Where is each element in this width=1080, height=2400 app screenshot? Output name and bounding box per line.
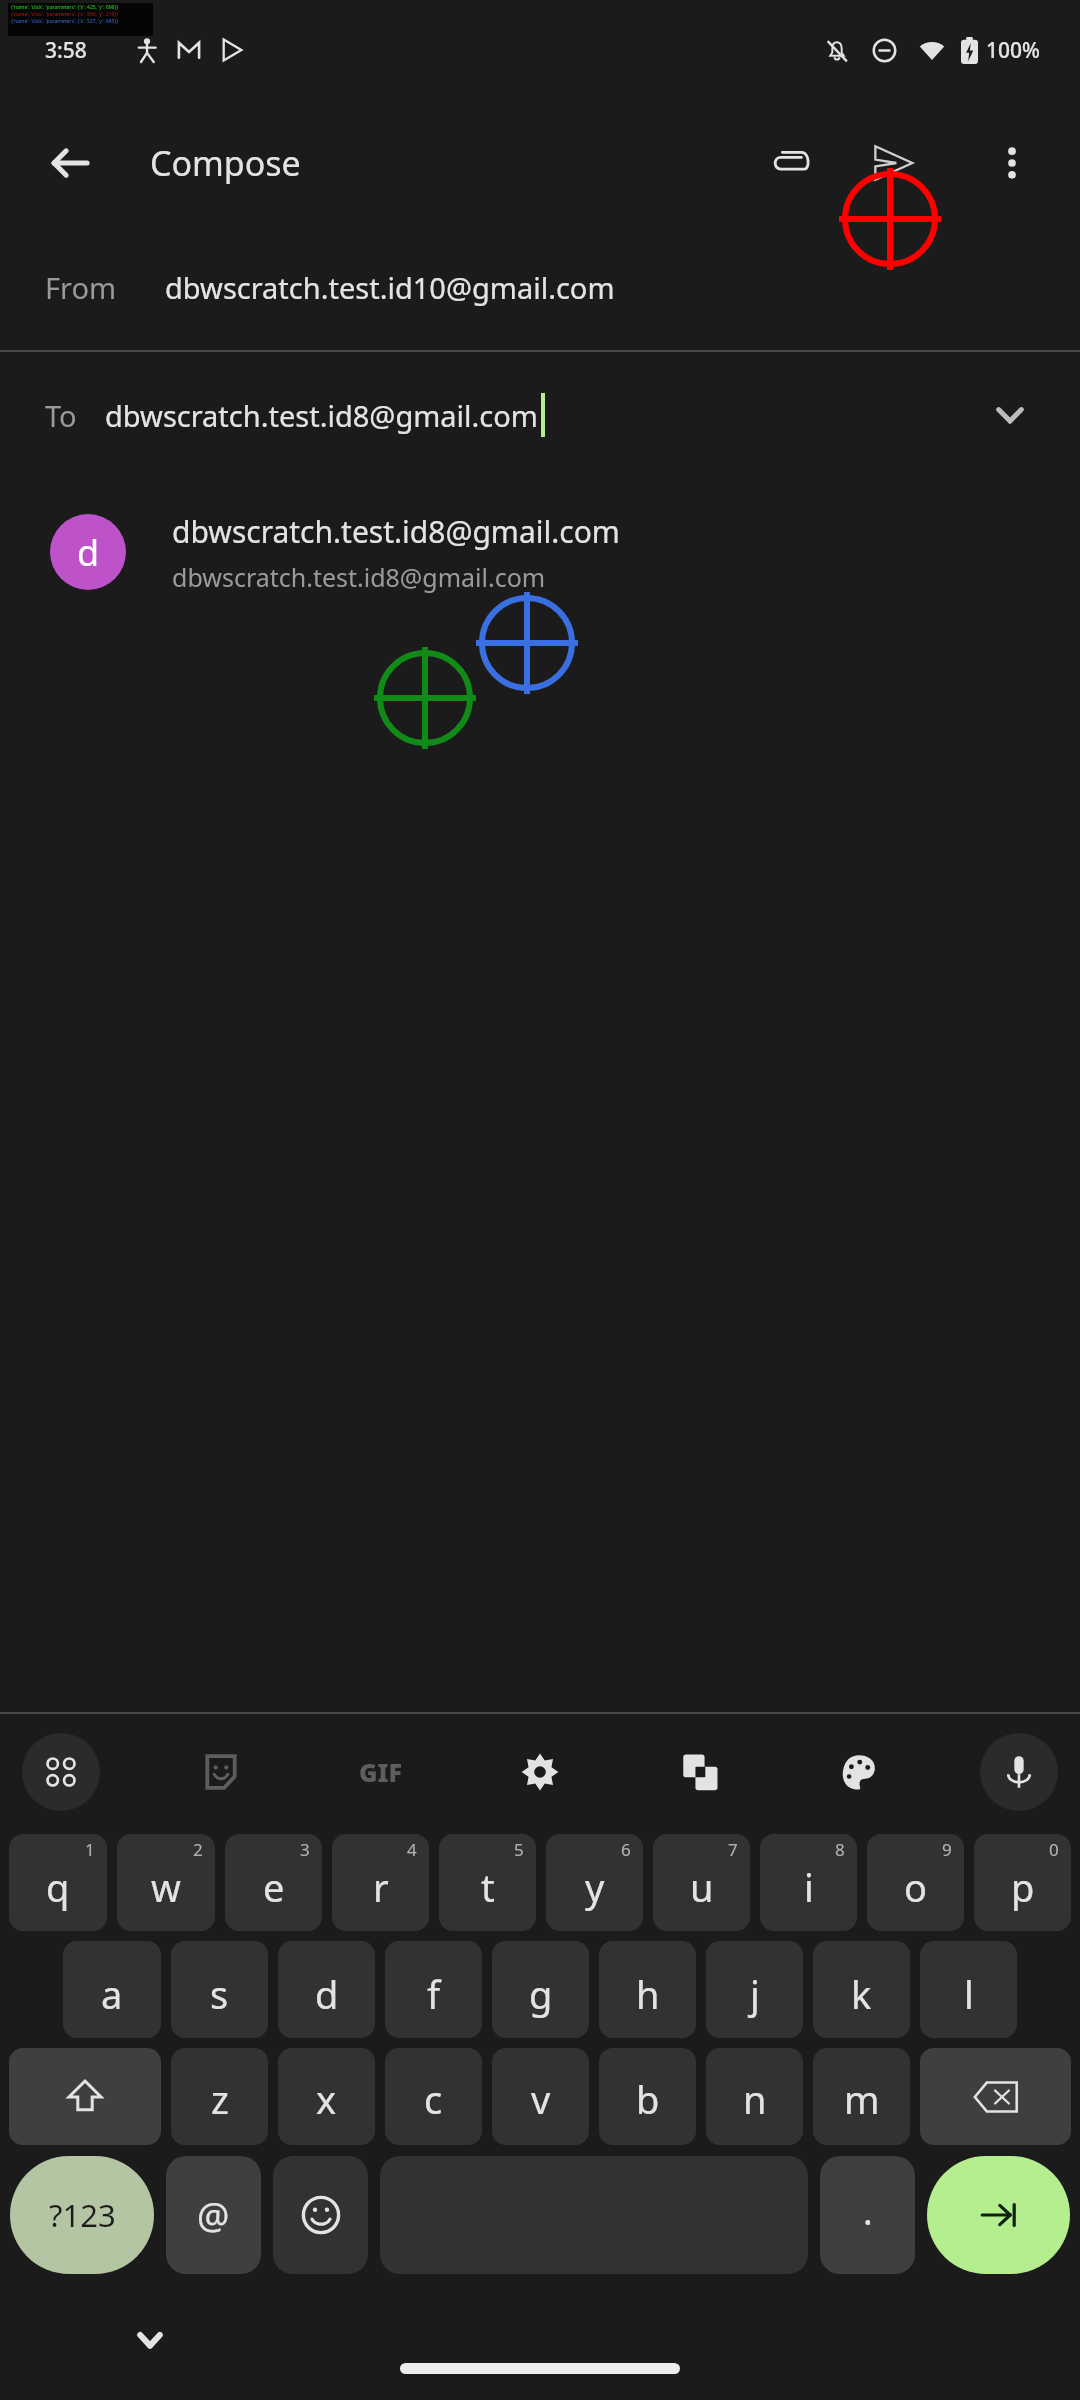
button[interactable]: l	[920, 1941, 1017, 2038]
button[interactable]: b	[599, 2048, 696, 2145]
staticText: f	[427, 1968, 441, 2020]
staticText: h	[636, 1968, 660, 2020]
staticText: From	[45, 268, 117, 307]
staticText: t	[481, 1861, 495, 1913]
button[interactable]: .	[820, 2156, 915, 2274]
button[interactable]: i	[760, 1834, 857, 1931]
staticText: .	[863, 2187, 873, 2236]
button[interactable]: o	[867, 1834, 964, 1931]
button[interactable]: Attach file	[750, 123, 830, 203]
staticText: d	[77, 528, 100, 577]
staticText: {'name': 'click', 'parameters': {'x': 42…	[11, 4, 119, 11]
button[interactable]: n	[706, 2048, 803, 2145]
button[interactable]: m	[813, 2048, 910, 2145]
button[interactable]: u	[653, 1834, 750, 1931]
button[interactable]: @	[166, 2156, 261, 2274]
button[interactable]: Hide keyboard	[120, 2310, 180, 2370]
button[interactable]: z	[171, 2048, 268, 2145]
button[interactable]: Enter	[927, 2156, 1070, 2274]
button[interactable]: Toolbox	[22, 1733, 100, 1811]
staticText: l	[964, 1968, 974, 2020]
staticText: 8	[835, 1838, 845, 1861]
button[interactable]: ?123	[10, 2156, 154, 2274]
staticText: @	[197, 2191, 230, 2240]
button[interactable]: Backspace	[920, 2048, 1071, 2145]
staticText: e	[263, 1861, 285, 1913]
staticText: b	[636, 2073, 660, 2125]
button[interactable]: t	[439, 1834, 536, 1931]
staticText: v	[531, 2073, 551, 2125]
staticText: k	[851, 1968, 872, 2020]
button[interactable]: k	[813, 1941, 910, 2038]
button[interactable]: q	[9, 1834, 107, 1931]
staticText: {'name': 'click', 'parameters': {'x': 52…	[11, 18, 119, 25]
staticText: Compose	[150, 140, 301, 186]
button[interactable]: d	[0, 477, 1080, 627]
staticText: 3:58	[45, 36, 87, 65]
button[interactable]: x	[278, 2048, 375, 2145]
button[interactable]: s	[171, 1941, 268, 2038]
staticText: 0	[1049, 1838, 1059, 1861]
button[interactable]: Expand recipients	[975, 380, 1045, 450]
staticText: w	[151, 1861, 181, 1913]
staticText: dbwscratch.test.id8@gmail.com	[105, 396, 538, 435]
button[interactable]: y	[546, 1834, 643, 1931]
button[interactable]: Themes	[820, 1733, 898, 1811]
staticText: 5	[514, 1838, 524, 1861]
staticText: 100%	[986, 36, 1040, 65]
staticText: 6	[621, 1838, 631, 1861]
button[interactable]: Send	[850, 120, 935, 205]
button[interactable]: d	[278, 1941, 375, 2038]
button[interactable]: c	[385, 2048, 482, 2145]
button[interactable]: e	[225, 1834, 322, 1931]
staticText: n	[743, 2073, 767, 2125]
staticText: g	[529, 1968, 553, 2020]
button[interactable]: More options	[972, 123, 1052, 203]
staticText: q	[46, 1861, 70, 1913]
button[interactable]: To	[0, 352, 1080, 477]
staticText: To	[45, 396, 77, 435]
button[interactable]: Stickers	[182, 1733, 260, 1811]
button[interactable]: Back	[30, 123, 110, 203]
staticText: 2	[193, 1838, 203, 1861]
staticText: o	[904, 1861, 927, 1913]
button[interactable]: Settings	[501, 1733, 579, 1811]
staticText: 4	[407, 1838, 417, 1861]
button[interactable]: a	[63, 1941, 161, 2038]
staticText: dbwscratch.test.id10@gmail.com	[165, 268, 615, 307]
button[interactable]: p	[974, 1834, 1071, 1931]
button[interactable]: j	[706, 1941, 803, 2038]
button[interactable]: Emoji	[273, 2156, 368, 2274]
staticText: 3	[300, 1838, 310, 1861]
staticText: c	[424, 2073, 443, 2125]
staticText: d	[315, 1968, 339, 2020]
staticText: s	[210, 1968, 229, 2020]
button[interactable]: Voice input	[980, 1733, 1058, 1811]
staticText: 7	[728, 1838, 738, 1861]
staticText: z	[211, 2073, 229, 2125]
button[interactable]: Translate	[661, 1733, 739, 1811]
button[interactable]: r	[332, 1834, 429, 1931]
staticText: GIF	[359, 1755, 402, 1789]
staticText: u	[690, 1861, 714, 1913]
staticText: {'name': 'click', 'parameters': {'x': 89…	[11, 11, 119, 18]
staticText: p	[1011, 1861, 1035, 1913]
button[interactable]: v	[492, 2048, 589, 2145]
button[interactable]: w	[117, 1834, 215, 1931]
staticText: 9	[942, 1838, 952, 1861]
staticText: x	[316, 2073, 337, 2125]
staticText: a	[101, 1968, 123, 2020]
button[interactable]: From	[0, 225, 1080, 350]
staticText: dbwscratch.test.id8@gmail.com	[172, 560, 546, 594]
button[interactable]: Shift	[9, 2048, 161, 2145]
staticText: y	[585, 1861, 605, 1913]
staticText: m	[844, 2073, 880, 2125]
button[interactable]: GIF	[341, 1733, 419, 1811]
button[interactable]: g	[492, 1941, 589, 2038]
button[interactable]: h	[599, 1941, 696, 2038]
staticText: 1	[85, 1838, 95, 1861]
staticText: r	[373, 1861, 389, 1913]
button[interactable]: f	[385, 1941, 482, 2038]
staticText: j	[750, 1968, 760, 2020]
